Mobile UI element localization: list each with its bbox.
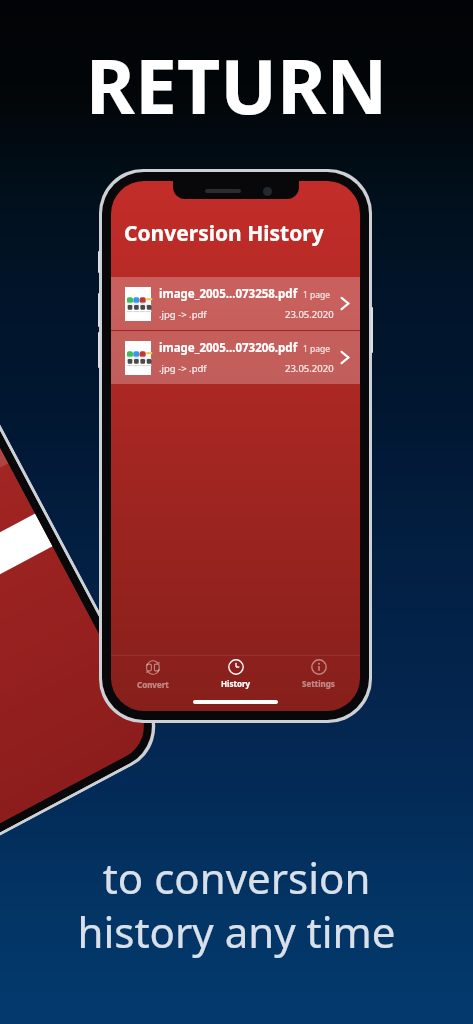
staticText: history any time — [0, 903, 473, 960]
other: Convert — [144, 659, 162, 676]
staticText: to conversion — [0, 849, 473, 906]
button[interactable]: Convert — [111, 657, 194, 692]
staticText: RETURN — [0, 34, 473, 136]
staticText: Settings — [302, 678, 335, 689]
staticText: .jpg -> .pdf — [159, 362, 207, 375]
button[interactable]: image_2005...073258.pdf — [111, 277, 360, 330]
staticText: .jpg -> .pdf — [159, 308, 207, 321]
button[interactable]: History — [194, 657, 277, 691]
staticText: image_2005...073206.pdf — [159, 340, 298, 356]
staticText: History — [221, 678, 251, 689]
staticText: 23.05.2020 — [285, 362, 334, 375]
staticText: Conversion History — [124, 219, 324, 248]
other: Settings — [311, 659, 327, 675]
staticText: 1 page — [303, 289, 331, 301]
staticText: Convert — [137, 679, 169, 690]
other: History — [228, 659, 244, 675]
button[interactable]: Settings — [277, 657, 360, 691]
button[interactable]: image_2005...073206.pdf — [111, 331, 360, 384]
staticText: image_2005...073258.pdf — [159, 286, 298, 302]
staticText: 1 page — [303, 343, 331, 355]
staticText: 23.05.2020 — [285, 308, 334, 321]
